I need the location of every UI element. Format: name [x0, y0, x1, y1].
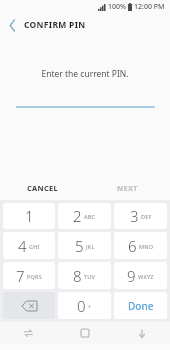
button[interactable]: 1	[3, 203, 55, 229]
staticText: TUV	[84, 273, 96, 280]
button[interactable]: CANCEL	[0, 176, 85, 200]
button[interactable]: Recent apps	[0, 322, 56, 344]
staticText: 3	[130, 206, 139, 226]
button[interactable]: 6	[114, 232, 167, 259]
button[interactable]: Hide keyboard	[113, 322, 170, 344]
staticText: CONFIRM PIN	[24, 19, 86, 31]
staticText: Done	[128, 299, 154, 313]
staticText: 4	[18, 236, 27, 256]
staticText: 7	[16, 266, 25, 286]
staticText: 9	[127, 266, 136, 286]
button[interactable]: Backspace	[3, 292, 55, 319]
button[interactable]: 7	[3, 262, 55, 289]
staticText: 0	[77, 296, 86, 316]
button[interactable]: NEXT	[85, 176, 170, 200]
staticText: DEF	[141, 213, 152, 220]
staticText: +	[88, 303, 92, 310]
staticText: 6	[128, 236, 137, 256]
button[interactable]: 8	[58, 262, 111, 289]
staticText: JKL	[86, 243, 95, 250]
staticText: 1	[25, 206, 34, 226]
staticText: 8	[73, 266, 82, 286]
button[interactable]: Back	[0, 14, 24, 36]
staticText: 100%	[108, 2, 126, 12]
button[interactable]: 9	[114, 262, 167, 289]
staticText: GHI	[29, 243, 40, 250]
staticText: 12:00 PM	[134, 2, 165, 12]
staticText: Enter the current PIN.	[0, 68, 170, 80]
button[interactable]: Done	[114, 292, 167, 319]
button[interactable]: 5	[58, 232, 111, 259]
staticText: MNO	[139, 243, 154, 250]
staticText: NEXT	[117, 183, 138, 193]
staticText: WXYZ	[138, 273, 154, 280]
button[interactable]: 3	[114, 203, 167, 229]
staticText: CANCEL	[27, 183, 59, 193]
staticText: 5	[75, 236, 84, 256]
button[interactable]: Home	[56, 322, 113, 344]
staticText: PQRS	[27, 273, 42, 280]
button[interactable]: 0	[58, 292, 111, 319]
button[interactable]: 2	[58, 203, 111, 229]
staticText: 2	[73, 206, 82, 226]
button[interactable]: 4	[3, 232, 55, 259]
staticText: ABC	[84, 213, 96, 220]
